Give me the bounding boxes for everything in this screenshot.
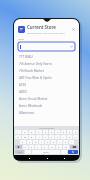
staticText: t (45, 136, 46, 139)
button[interactable]: w (22, 135, 28, 139)
button[interactable]: 7 (55, 130, 60, 134)
button[interactable]: 1 (15, 130, 21, 134)
staticText: w (24, 136, 26, 139)
button[interactable]: r (36, 135, 42, 139)
button[interactable]: 8 (61, 130, 66, 134)
staticText: r (39, 136, 40, 139)
staticText: Albertsons (19, 111, 35, 115)
button[interactable]: 777 BEAU (14, 53, 79, 60)
button[interactable]: Home (45, 156, 49, 160)
button[interactable]: ?123 (15, 150, 24, 154)
staticText: 1 (17, 131, 19, 134)
staticText: u (57, 136, 59, 139)
button[interactable]: b (49, 145, 55, 149)
button[interactable]: 9 (67, 130, 72, 134)
button[interactable] (18, 42, 75, 51)
button[interactable]: k (63, 140, 68, 144)
staticText: v (44, 146, 46, 149)
button[interactable]: g (45, 140, 50, 144)
button[interactable]: Backspace (70, 145, 78, 149)
button[interactable]: t (43, 135, 48, 139)
button[interactable]: Space (32, 150, 60, 154)
button[interactable]: Close (72, 28, 75, 31)
staticText: f (41, 141, 42, 144)
button[interactable]: ACES (14, 81, 79, 88)
button[interactable]: u (55, 135, 60, 139)
button[interactable]: 2 (22, 130, 28, 134)
button[interactable]: Recents (62, 156, 66, 160)
button[interactable]: d (33, 140, 38, 144)
button[interactable]: q (15, 135, 21, 139)
staticText: p (75, 136, 77, 139)
staticText: 7th Beach Market (19, 69, 44, 73)
staticText: c (37, 146, 39, 149)
staticText: d (35, 141, 37, 144)
button[interactable]: y (49, 135, 54, 139)
button[interactable]: e (29, 135, 35, 139)
staticText: 7th Avenue Only Stores (19, 62, 52, 66)
button[interactable]: Albertsons (14, 109, 79, 116)
staticText: h (53, 141, 55, 144)
staticText: Add to dictionary (39, 127, 55, 129)
staticText: i (63, 136, 64, 139)
button[interactable]: ARCO (14, 88, 79, 95)
staticText: n (58, 146, 60, 149)
button[interactable]: l (69, 140, 74, 144)
button[interactable]: j (57, 140, 62, 144)
staticText: m (65, 146, 68, 149)
button[interactable]: Acme Circuit Market (14, 95, 79, 102)
staticText: q (17, 136, 19, 139)
button[interactable]: c (35, 145, 41, 149)
staticText: s (29, 141, 31, 144)
staticText: 7 (57, 131, 59, 134)
button[interactable]: x (29, 145, 34, 149)
button[interactable]: h (51, 140, 56, 144)
staticText: . (64, 151, 65, 154)
staticText: 6 (51, 131, 53, 134)
button[interactable]: n (56, 145, 62, 149)
staticText: o (69, 136, 71, 139)
staticText: e (31, 136, 33, 139)
button[interactable]: 7th Beach Market (14, 67, 79, 74)
button[interactable]: f (39, 140, 44, 144)
staticText: 9 (69, 131, 71, 134)
button[interactable]: 7th Avenue Only Stores (14, 60, 79, 67)
button[interactable]: Current Store (14, 23, 79, 35)
button[interactable]: 3 (29, 130, 35, 134)
button[interactable]: 6 (49, 130, 54, 134)
button[interactable]: i (61, 135, 66, 139)
button[interactable]: v (42, 145, 48, 149)
button[interactable]: Acme Wholesale (14, 102, 79, 109)
button[interactable]: p (73, 135, 78, 139)
staticText: 777 BEAU (19, 55, 33, 59)
staticText: ACES (19, 83, 27, 87)
button[interactable]: 4 (36, 130, 42, 134)
staticText: k (65, 141, 67, 144)
button[interactable]: ABC Fine Wine & Spirits (14, 74, 79, 81)
staticText: , (28, 151, 29, 154)
staticText: Acme Wholesale (19, 104, 43, 108)
button[interactable]: z (23, 145, 28, 149)
staticText: Store (18, 38, 24, 41)
staticText: ARCO (19, 90, 27, 94)
staticText: Acme Circuit Market (19, 97, 48, 101)
staticText: g (47, 141, 49, 144)
button[interactable]: o (67, 135, 72, 139)
button[interactable]: , (25, 150, 31, 154)
staticText: English (43, 151, 49, 153)
staticText: z (25, 146, 27, 149)
staticText: j (59, 141, 60, 144)
staticText: ABC Fine Wine & Spirits (19, 76, 52, 80)
button[interactable]: Shift (15, 145, 22, 149)
staticText: x (31, 146, 33, 149)
button[interactable]: m (63, 145, 69, 149)
button[interactable]: 5 (43, 130, 48, 134)
button[interactable]: Search (68, 150, 78, 154)
button[interactable]: Back (27, 156, 31, 160)
button[interactable]: a (20, 140, 26, 144)
button[interactable]: s (27, 140, 32, 144)
staticText: 2 (24, 131, 26, 134)
button[interactable]: 0 (73, 130, 78, 134)
staticText: y (51, 136, 53, 139)
